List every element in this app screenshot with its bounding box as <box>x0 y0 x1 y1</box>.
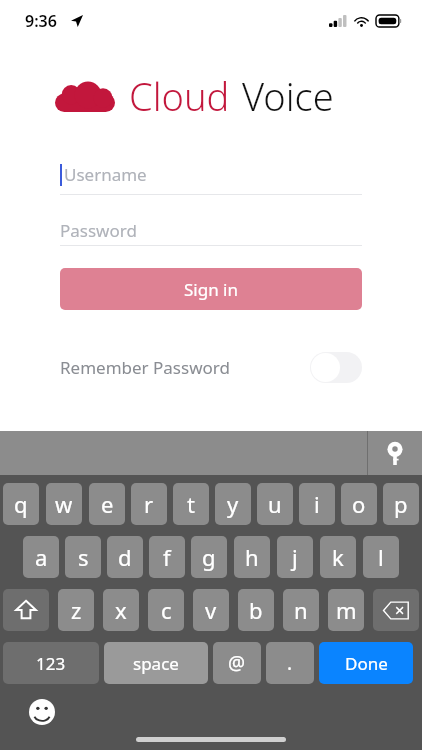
button[interactable]: h <box>234 536 270 578</box>
button[interactable]: . <box>266 642 314 684</box>
staticText: Voice <box>242 70 334 122</box>
button[interactable]: x <box>103 589 139 631</box>
staticText: v <box>205 595 217 625</box>
button[interactable]: Sign in <box>60 268 362 310</box>
staticText: y <box>227 489 239 519</box>
staticText: r <box>144 489 154 519</box>
button[interactable]: Emoji <box>28 698 56 726</box>
button[interactable]: n <box>283 589 319 631</box>
button[interactable]: Passwords <box>368 431 422 475</box>
staticText: Cloud <box>129 70 230 122</box>
staticText: o <box>352 489 366 519</box>
staticText: m <box>336 595 357 625</box>
button[interactable]: u <box>257 483 293 525</box>
button[interactable]: i <box>299 483 335 525</box>
button[interactable]: t <box>173 483 209 525</box>
staticText: a <box>35 542 48 572</box>
staticText: d <box>118 542 132 572</box>
staticText: i <box>314 489 320 519</box>
staticText: t <box>187 489 195 519</box>
staticText: f <box>163 542 171 572</box>
staticText: j <box>292 542 298 572</box>
button[interactable]: j <box>277 536 313 578</box>
button[interactable]: r <box>131 483 167 525</box>
button[interactable]: c <box>148 589 184 631</box>
staticText: s <box>78 542 89 572</box>
button[interactable]: Remember Password <box>60 350 362 384</box>
staticText: Remember Password <box>60 356 230 379</box>
staticText: w <box>55 489 73 519</box>
button[interactable]: v <box>193 589 229 631</box>
staticText: u <box>268 489 282 519</box>
staticText: q <box>14 489 28 519</box>
button[interactable]: m <box>328 589 364 631</box>
button[interactable]: o <box>341 483 377 525</box>
staticText: 9:36 <box>25 10 57 32</box>
staticText: e <box>101 489 114 519</box>
staticText: Done <box>345 652 388 675</box>
staticText: n <box>294 595 308 625</box>
button[interactable]: g <box>191 536 227 578</box>
staticText: 123 <box>36 652 66 675</box>
button[interactable]: Backspace <box>373 589 419 631</box>
button[interactable]: Password <box>60 215 362 245</box>
button[interactable]: z <box>58 589 94 631</box>
staticText: l <box>378 542 384 572</box>
button[interactable]: Username <box>60 154 362 194</box>
staticText: g <box>202 542 216 572</box>
button[interactable]: d <box>107 536 143 578</box>
button[interactable]: space <box>104 642 208 684</box>
button[interactable]: @ <box>213 642 261 684</box>
button[interactable]: e <box>89 483 125 525</box>
staticText: space <box>133 652 179 675</box>
button[interactable]: s <box>65 536 101 578</box>
staticText: z <box>71 595 82 625</box>
staticText: b <box>249 595 263 625</box>
staticText: Username <box>64 163 147 186</box>
staticText: @ <box>228 650 246 676</box>
button[interactable]: w <box>46 483 82 525</box>
staticText: Password <box>60 219 137 242</box>
button[interactable]: b <box>238 589 274 631</box>
staticText: p <box>394 489 408 519</box>
staticText: . <box>287 650 293 676</box>
staticText: c <box>161 595 172 625</box>
button[interactable]: f <box>149 536 185 578</box>
button[interactable]: l <box>363 536 399 578</box>
button[interactable]: q <box>3 483 39 525</box>
staticText: Sign in <box>184 278 238 301</box>
button[interactable]: a <box>23 536 59 578</box>
staticText: x <box>115 595 127 625</box>
button[interactable]: Shift <box>3 589 49 631</box>
button[interactable]: p <box>383 483 419 525</box>
button[interactable]: 123 <box>3 642 99 684</box>
staticText: k <box>332 542 344 572</box>
staticText: h <box>245 542 259 572</box>
button[interactable]: k <box>320 536 356 578</box>
other: Remember password toggle <box>310 352 362 383</box>
button[interactable]: y <box>215 483 251 525</box>
button[interactable]: Done <box>319 642 413 684</box>
